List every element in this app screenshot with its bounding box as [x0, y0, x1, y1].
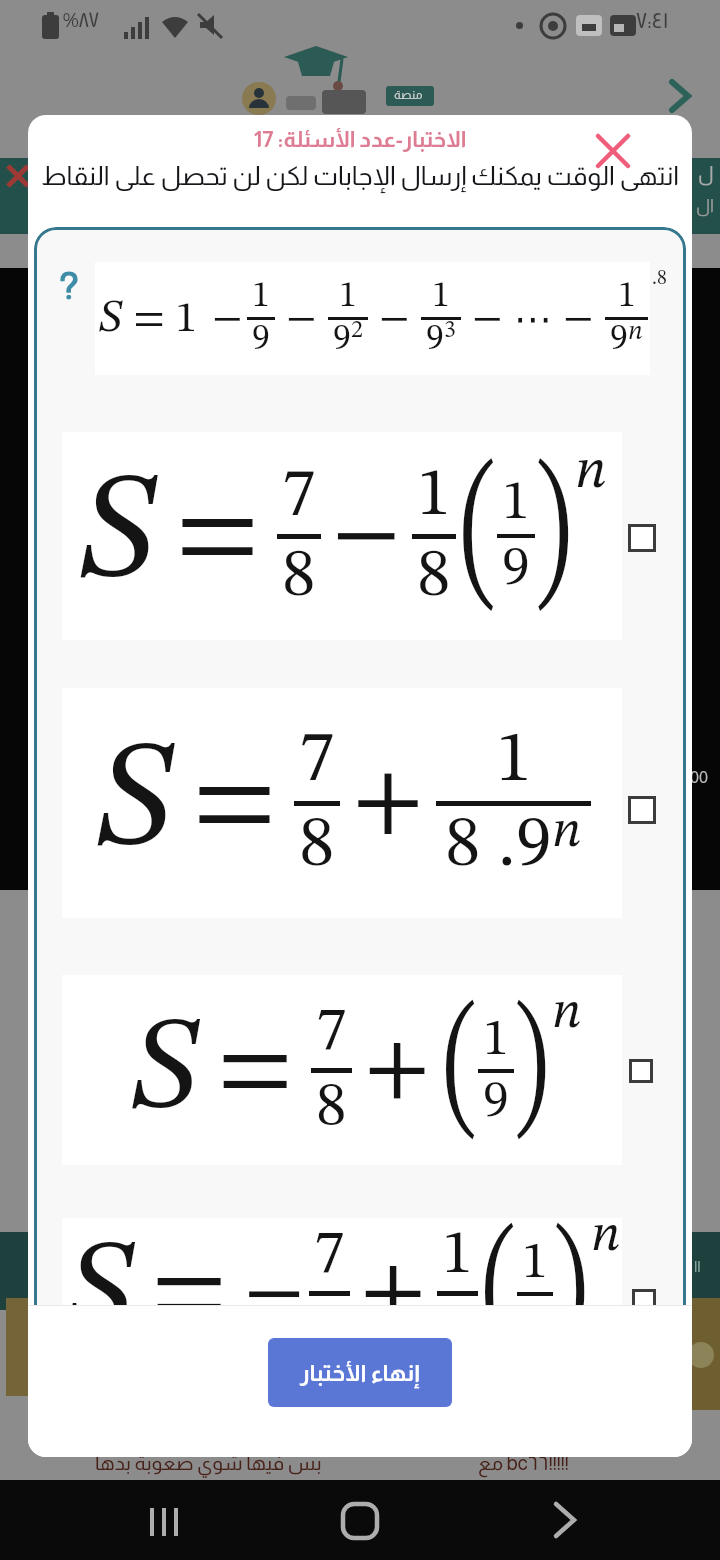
- staticText: مع bc٦٦!!!!!: [478, 1452, 569, 1474]
- staticText: −: [563, 298, 594, 340]
- button[interactable]: S: [62, 432, 622, 640]
- staticText: S: [98, 296, 123, 342]
- staticText: =: [192, 745, 277, 863]
- staticText: ال: [696, 196, 715, 216]
- staticText: 8: [299, 810, 335, 882]
- button[interactable]: S: [62, 1218, 622, 1357]
- staticText: =: [175, 477, 260, 595]
- button[interactable]: [632, 1289, 656, 1313]
- staticText: ): [514, 995, 549, 1147]
- staticText: +: [360, 1248, 427, 1340]
- staticText: 7: [299, 725, 335, 797]
- staticText: 1: [417, 462, 451, 530]
- staticText: +: [352, 754, 424, 854]
- staticText: بس فيها شوي صعوبة بدها: [95, 1452, 322, 1474]
- staticText: (: [482, 1218, 517, 1357]
- staticText: 1: [432, 279, 450, 315]
- staticText: 1: [483, 1014, 509, 1066]
- staticText: n: [591, 1210, 621, 1262]
- staticText: اا: [694, 1258, 701, 1275]
- staticText: 9: [522, 1299, 548, 1351]
- staticText: +: [364, 1025, 431, 1117]
- button[interactable]: [628, 524, 656, 552]
- staticText: =: [217, 1018, 294, 1124]
- staticText: 8: [314, 1300, 345, 1357]
- staticText: 9: [516, 810, 552, 882]
- staticText: ل: [698, 162, 714, 184]
- staticText: =: [151, 1241, 228, 1347]
- button[interactable]: إنهاء الأختبار: [268, 1338, 452, 1407]
- staticText: 1: [522, 1237, 548, 1289]
- staticText: 7: [314, 1225, 345, 1287]
- staticText: ⋯: [514, 297, 552, 341]
- staticText: 2: [351, 319, 363, 343]
- staticText: 1: [339, 279, 357, 315]
- staticText: (: [443, 995, 478, 1147]
- staticText: n: [552, 806, 582, 858]
- staticText: = 1: [123, 297, 208, 341]
- staticText: 9: [502, 541, 530, 597]
- staticText: 7: [316, 1002, 347, 1064]
- staticText: n: [628, 319, 643, 345]
- staticText: 7: [282, 462, 316, 530]
- staticText: S: [77, 461, 158, 611]
- staticText: إنهاء الأختبار: [300, 1360, 420, 1386]
- staticText: n: [575, 444, 607, 500]
- staticText: 8: [442, 1300, 473, 1357]
- staticText: ): [535, 452, 572, 620]
- staticText: 8: [417, 543, 451, 611]
- staticText: .8: [652, 269, 667, 289]
- staticText: 1: [502, 475, 530, 531]
- staticText: 3: [444, 319, 456, 343]
- button[interactable]: [629, 1059, 653, 1083]
- staticText: .: [481, 810, 516, 882]
- staticText: S: [129, 1005, 200, 1137]
- button[interactable]: S: [62, 688, 622, 918]
- staticText: ): [553, 1218, 588, 1357]
- staticText: ٧:٤١: [636, 8, 669, 33]
- staticText: 9: [610, 322, 628, 358]
- staticText: n: [552, 987, 582, 1039]
- staticText: −: [212, 298, 243, 340]
- staticText: 9: [426, 322, 444, 358]
- staticText: −: [379, 298, 410, 340]
- staticText: 9: [333, 322, 351, 358]
- button[interactable]: [332, 1490, 388, 1550]
- staticText: ?: [58, 265, 79, 307]
- staticText: 8: [282, 543, 316, 611]
- staticText: −: [286, 298, 317, 340]
- staticText: (: [460, 452, 497, 620]
- staticText: انتهى الوقت يمكنك إرسال الإجابات لكن لن …: [28, 161, 692, 190]
- staticText: S: [64, 1228, 135, 1357]
- staticText: 1: [252, 279, 270, 315]
- button[interactable]: [628, 796, 656, 824]
- staticText: 1: [496, 725, 532, 797]
- staticText: 9: [483, 1076, 509, 1128]
- staticText: 8: [316, 1077, 347, 1139]
- staticText: 1: [618, 279, 636, 315]
- staticText: %٨٧: [63, 8, 100, 31]
- staticText: −: [472, 298, 503, 340]
- staticText: منصة: [394, 88, 423, 101]
- button[interactable]: S: [62, 975, 622, 1165]
- button[interactable]: [536, 1490, 592, 1550]
- button[interactable]: [140, 1490, 192, 1550]
- staticText: 9: [252, 322, 270, 358]
- staticText: −: [244, 1252, 305, 1336]
- staticText: الاختبار-عدد الأسئلة: 17: [28, 127, 692, 152]
- staticText: 00: [690, 768, 708, 787]
- staticText: S: [94, 729, 175, 879]
- staticText: 1: [442, 1225, 473, 1287]
- button[interactable]: [591, 129, 635, 173]
- staticText: −: [332, 489, 401, 584]
- staticText: 8: [445, 810, 481, 882]
